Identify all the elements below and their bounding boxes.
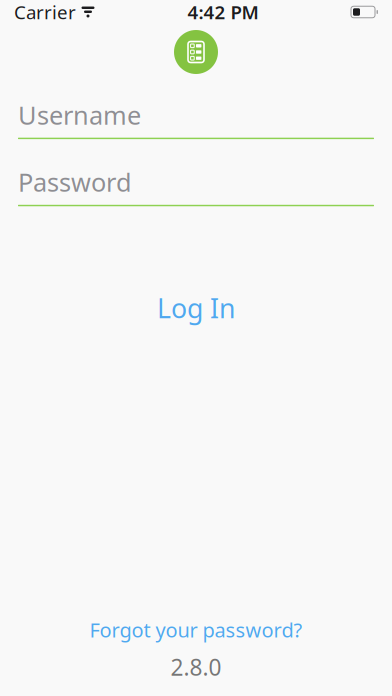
button[interactable]: Password <box>0 165 392 206</box>
button[interactable]: Forgot your password? <box>81 613 310 646</box>
staticText: Carrier <box>14 0 76 24</box>
staticText: Username <box>18 98 141 132</box>
staticText: Password <box>18 165 132 199</box>
staticText: Log In <box>157 290 235 326</box>
staticText: Forgot your password? <box>89 616 302 643</box>
staticText: 4:42 PM <box>187 0 258 24</box>
button[interactable]: Log In <box>0 278 392 338</box>
button[interactable]: Username <box>0 98 392 139</box>
staticText: 2.8.0 <box>170 652 221 682</box>
